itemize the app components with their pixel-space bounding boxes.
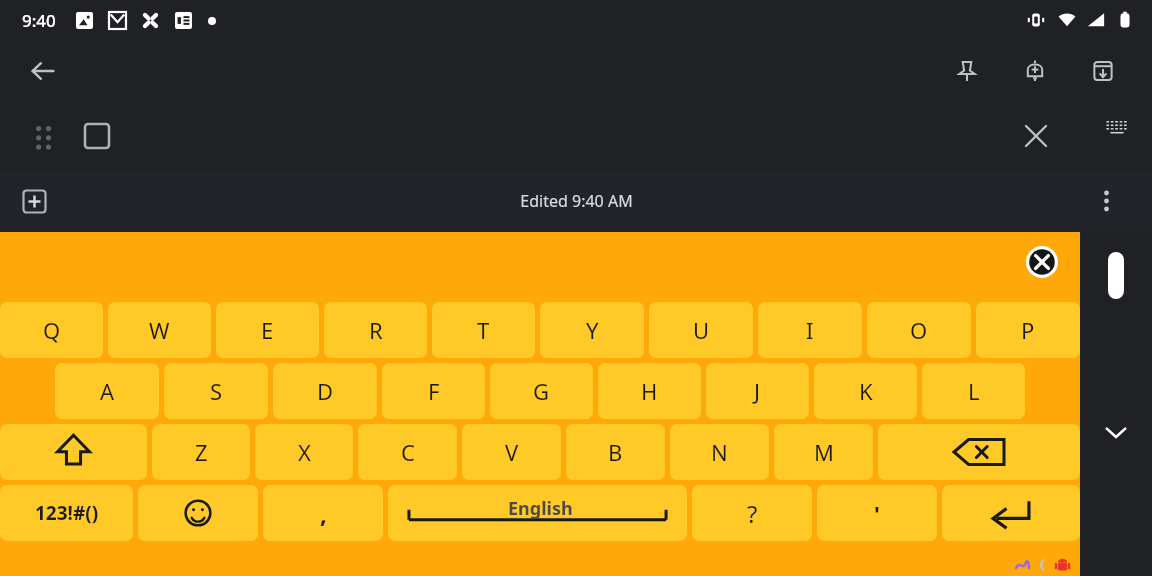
button[interactable]: Enter [942,485,1080,541]
button[interactable]: Back [20,48,66,94]
button[interactable]: C [358,424,457,480]
button[interactable]: A [55,363,159,419]
button[interactable]: Remind me [1012,48,1058,94]
staticText: G [533,376,550,406]
button[interactable]: Backspace [878,424,1080,480]
staticText: English [508,496,573,521]
staticText: H [641,376,658,406]
button[interactable]: Add [12,179,56,223]
staticText: R [369,315,383,345]
staticText: O [910,315,928,345]
button[interactable]: Close [1014,114,1058,158]
staticText: W [149,315,170,345]
button[interactable]: S [164,363,268,419]
staticText: M [814,437,834,467]
staticText: 123!#() [35,500,99,526]
staticText: Z [195,437,208,467]
staticText: P [1021,315,1035,345]
button[interactable]: Show keyboard [1102,113,1132,143]
staticText: ? [747,497,758,530]
button[interactable]: Q [0,302,103,358]
staticText: D [317,376,334,406]
button[interactable]: ? [692,485,812,541]
staticText: E [261,315,274,345]
button[interactable]: G [490,363,593,419]
button[interactable]: R [324,302,427,358]
button[interactable]: W [108,302,211,358]
staticText: F [428,376,440,406]
button[interactable]: F [382,363,485,419]
button[interactable]: K [814,363,917,419]
button[interactable]: Z [152,424,250,480]
staticText: , [320,497,327,530]
button[interactable]: More options [1084,179,1128,223]
staticText: A [100,376,115,406]
staticText: B [608,437,623,467]
button[interactable]: , [263,485,383,541]
staticText: U [693,315,710,345]
button[interactable]: Emoji [138,485,258,541]
button[interactable]: Space [388,485,687,541]
button[interactable]: Close keyboard [1024,244,1060,280]
button[interactable]: O [867,302,971,358]
button[interactable]: Reorder [26,118,62,154]
staticText: X [298,437,311,467]
button[interactable]: 123!#() [0,485,133,541]
button[interactable]: J [706,363,809,419]
button[interactable]: N [670,424,769,480]
staticText: V [505,437,519,467]
button[interactable]: T [432,302,535,358]
button[interactable]: Pin [944,48,990,94]
button[interactable]: M [774,424,873,480]
button[interactable]: Checkbox [76,115,118,157]
staticText: J [754,376,761,406]
staticText: Y [586,315,599,345]
staticText: 9:40 [22,9,56,32]
button[interactable]: P [976,302,1080,358]
staticText: ' [874,498,880,528]
staticText: C [401,437,415,467]
staticText: Q [43,315,61,345]
button[interactable]: ' [817,485,937,541]
button[interactable]: H [598,363,701,419]
button[interactable]: Y [540,302,644,358]
button[interactable]: U [649,302,753,358]
button[interactable]: Archive [1080,48,1126,94]
button[interactable]: L [922,363,1025,419]
staticText: N [711,437,728,467]
button[interactable]: D [273,363,377,419]
staticText: I [806,315,814,345]
staticText: T [477,315,490,345]
button[interactable]: I [758,302,862,358]
button[interactable]: B [566,424,665,480]
staticText: L [968,376,980,406]
staticText: K [859,376,873,406]
button[interactable]: E [216,302,319,358]
button[interactable]: X [255,424,353,480]
button[interactable]: Hide keyboard [1096,412,1136,452]
staticText: S [210,376,223,406]
button[interactable]: Shift [0,424,147,480]
button[interactable]: V [462,424,561,480]
staticText: Edited 9:40 AM [520,190,633,212]
